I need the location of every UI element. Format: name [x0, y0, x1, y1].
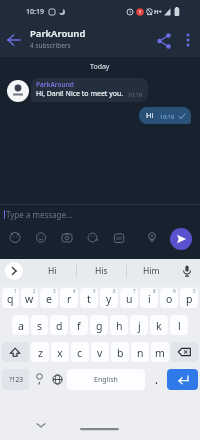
staticText: c	[77, 346, 83, 360]
button[interactable]: u	[120, 288, 138, 308]
button[interactable]	[171, 342, 198, 362]
staticText: 10:19	[128, 91, 143, 98]
staticText: r	[67, 292, 72, 306]
staticText: f	[77, 319, 81, 333]
staticText: His	[95, 265, 108, 277]
button[interactable]: r	[60, 288, 78, 308]
staticText: Him	[143, 265, 160, 277]
button[interactable]	[58, 223, 76, 254]
button[interactable]: ParkAround	[31, 78, 148, 102]
staticText: l	[178, 319, 181, 333]
staticText: n	[137, 346, 144, 360]
staticText: 5	[93, 288, 96, 294]
staticText: 8	[153, 288, 156, 294]
button[interactable]: b	[111, 342, 129, 362]
staticText: b	[117, 346, 124, 360]
button[interactable]	[143, 223, 161, 254]
staticText: h	[116, 319, 123, 333]
button[interactable]: i	[140, 288, 158, 308]
button[interactable]: q	[2, 288, 19, 308]
button[interactable]: o	[160, 288, 178, 308]
button[interactable]: .	[146, 369, 166, 390]
staticText: 0	[193, 288, 196, 294]
staticText: z	[38, 346, 43, 360]
button[interactable]	[48, 369, 65, 390]
button[interactable]	[84, 223, 102, 254]
staticText: 9	[173, 288, 176, 294]
staticText: t	[87, 292, 91, 306]
staticText: o	[166, 292, 173, 306]
button[interactable]: Hi	[28, 259, 76, 283]
staticText: k	[156, 319, 162, 333]
staticText: English	[94, 375, 118, 385]
button[interactable]: h	[110, 315, 128, 335]
button[interactable]	[110, 223, 128, 254]
button[interactable]	[5, 262, 23, 280]
staticText: 1	[14, 288, 17, 294]
button[interactable]	[167, 369, 198, 390]
staticText: Today	[90, 62, 110, 72]
staticText: i	[148, 292, 151, 306]
button[interactable]	[155, 32, 173, 50]
button[interactable]: k	[150, 315, 168, 335]
button[interactable]: v	[91, 342, 109, 362]
staticText: u	[126, 292, 133, 306]
button[interactable]	[6, 223, 24, 254]
button[interactable]	[180, 264, 194, 278]
button[interactable]: l	[170, 315, 188, 335]
staticText: p	[186, 292, 193, 306]
button[interactable]: n	[131, 342, 149, 362]
button[interactable]: His	[77, 259, 126, 283]
button[interactable]	[3, 29, 25, 51]
staticText: ParkAround	[30, 27, 86, 40]
button[interactable]: m	[151, 342, 169, 362]
staticText: 4	[73, 288, 76, 294]
staticText: 3	[53, 288, 56, 294]
button[interactable]: a	[12, 315, 29, 335]
button[interactable]: z	[31, 342, 49, 362]
button[interactable]: w	[21, 288, 38, 308]
button[interactable]: y	[100, 288, 118, 308]
button[interactable]: t	[80, 288, 98, 308]
staticText: ParkAround	[36, 80, 74, 89]
button[interactable]: x	[51, 342, 69, 362]
button[interactable]: f	[70, 315, 88, 335]
staticText: 6	[113, 288, 116, 294]
staticText: a	[18, 319, 24, 333]
button[interactable]: Him	[127, 259, 176, 283]
button[interactable]: c	[71, 342, 89, 362]
staticText: Hi	[48, 265, 57, 277]
staticText: j	[138, 319, 141, 333]
staticText: e	[46, 292, 52, 306]
button[interactable]: j	[130, 315, 148, 335]
staticText: H+	[154, 8, 163, 16]
staticText: v	[97, 346, 103, 360]
button[interactable]	[170, 228, 192, 250]
staticText: d	[56, 319, 63, 333]
button[interactable]: e	[40, 288, 58, 308]
staticText: Type a message...	[6, 209, 73, 220]
staticText: 10:19	[160, 113, 175, 120]
button[interactable]: English	[67, 369, 145, 390]
button[interactable]: g	[90, 315, 108, 335]
staticText: 2	[33, 288, 36, 294]
button[interactable]: Type a message...	[0, 205, 200, 223]
staticText: 7	[133, 288, 136, 294]
button[interactable]	[31, 369, 46, 390]
staticText: s	[37, 319, 43, 333]
staticText: g	[96, 319, 103, 333]
button[interactable]: ?123	[2, 369, 29, 390]
button[interactable]: Hi	[139, 107, 191, 124]
staticText: Hi, Dani! Nice to meet you.	[36, 89, 124, 99]
staticText: m	[155, 346, 165, 360]
staticText: w	[25, 292, 34, 306]
button[interactable]: p	[180, 288, 198, 308]
staticText: q	[7, 292, 14, 306]
staticText: ?123	[9, 375, 23, 384]
button[interactable]	[32, 223, 50, 254]
button[interactable]	[2, 342, 29, 362]
button[interactable]	[180, 32, 196, 48]
staticText: .	[155, 373, 158, 387]
button[interactable]: s	[31, 315, 48, 335]
button[interactable]: d	[50, 315, 68, 335]
